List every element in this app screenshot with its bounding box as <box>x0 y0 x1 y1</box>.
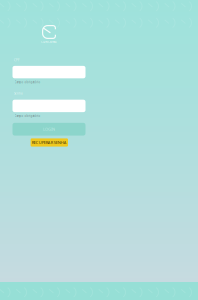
staticText: LOGIN <box>43 126 55 132</box>
button[interactable]: RECUPERAR SENHA <box>31 138 68 147</box>
staticText: RECUPERAR SENHA <box>32 140 67 145</box>
staticText: CPF <box>14 58 19 62</box>
staticText: CLINICAMED <box>41 40 57 43</box>
staticText: Campo obrigatório <box>14 80 40 84</box>
staticText: Campo obrigatório <box>14 114 40 118</box>
staticText: Senha <box>14 92 22 95</box>
button[interactable]: LOGIN <box>12 123 85 136</box>
